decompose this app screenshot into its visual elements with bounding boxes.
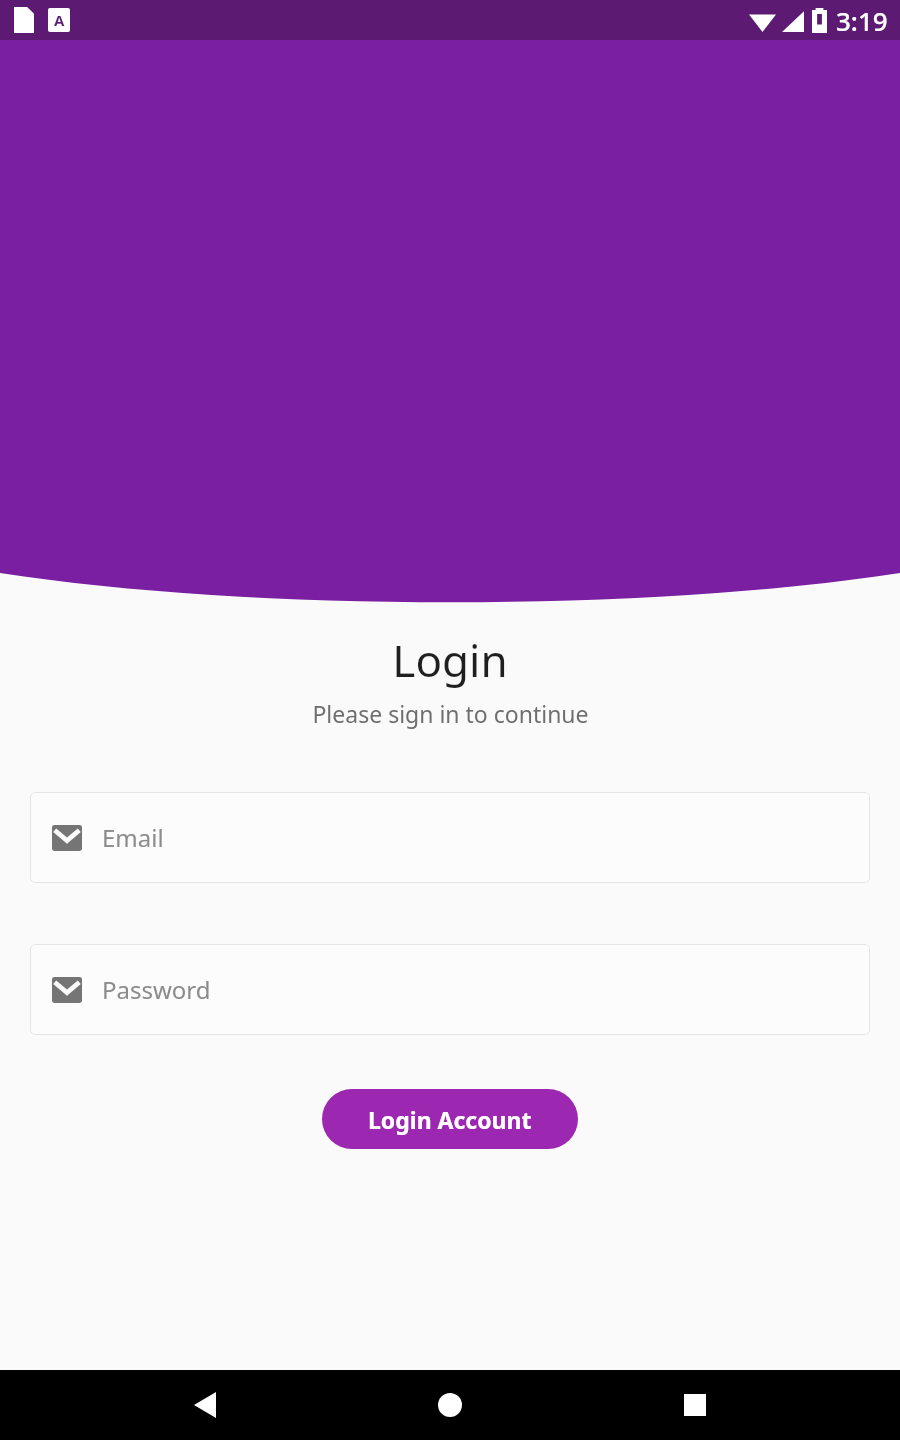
staticText: Please sign in to continue bbox=[312, 698, 589, 729]
button[interactable]: Email bbox=[30, 944, 870, 1035]
staticText: A bbox=[54, 10, 65, 30]
staticText: 3:19 bbox=[836, 3, 888, 38]
staticText: Email bbox=[102, 821, 164, 854]
staticText: Login Account bbox=[368, 1104, 532, 1135]
staticText: Login bbox=[392, 630, 508, 690]
other: Email bbox=[52, 977, 82, 1003]
button[interactable]: Email bbox=[30, 792, 870, 883]
other: Email bbox=[52, 825, 82, 851]
staticText: Password bbox=[102, 973, 211, 1006]
button[interactable]: Recent apps bbox=[655, 1370, 735, 1440]
button[interactable]: Login Account bbox=[322, 1089, 578, 1149]
button[interactable]: Back bbox=[165, 1370, 245, 1440]
button[interactable]: Home bbox=[410, 1370, 490, 1440]
